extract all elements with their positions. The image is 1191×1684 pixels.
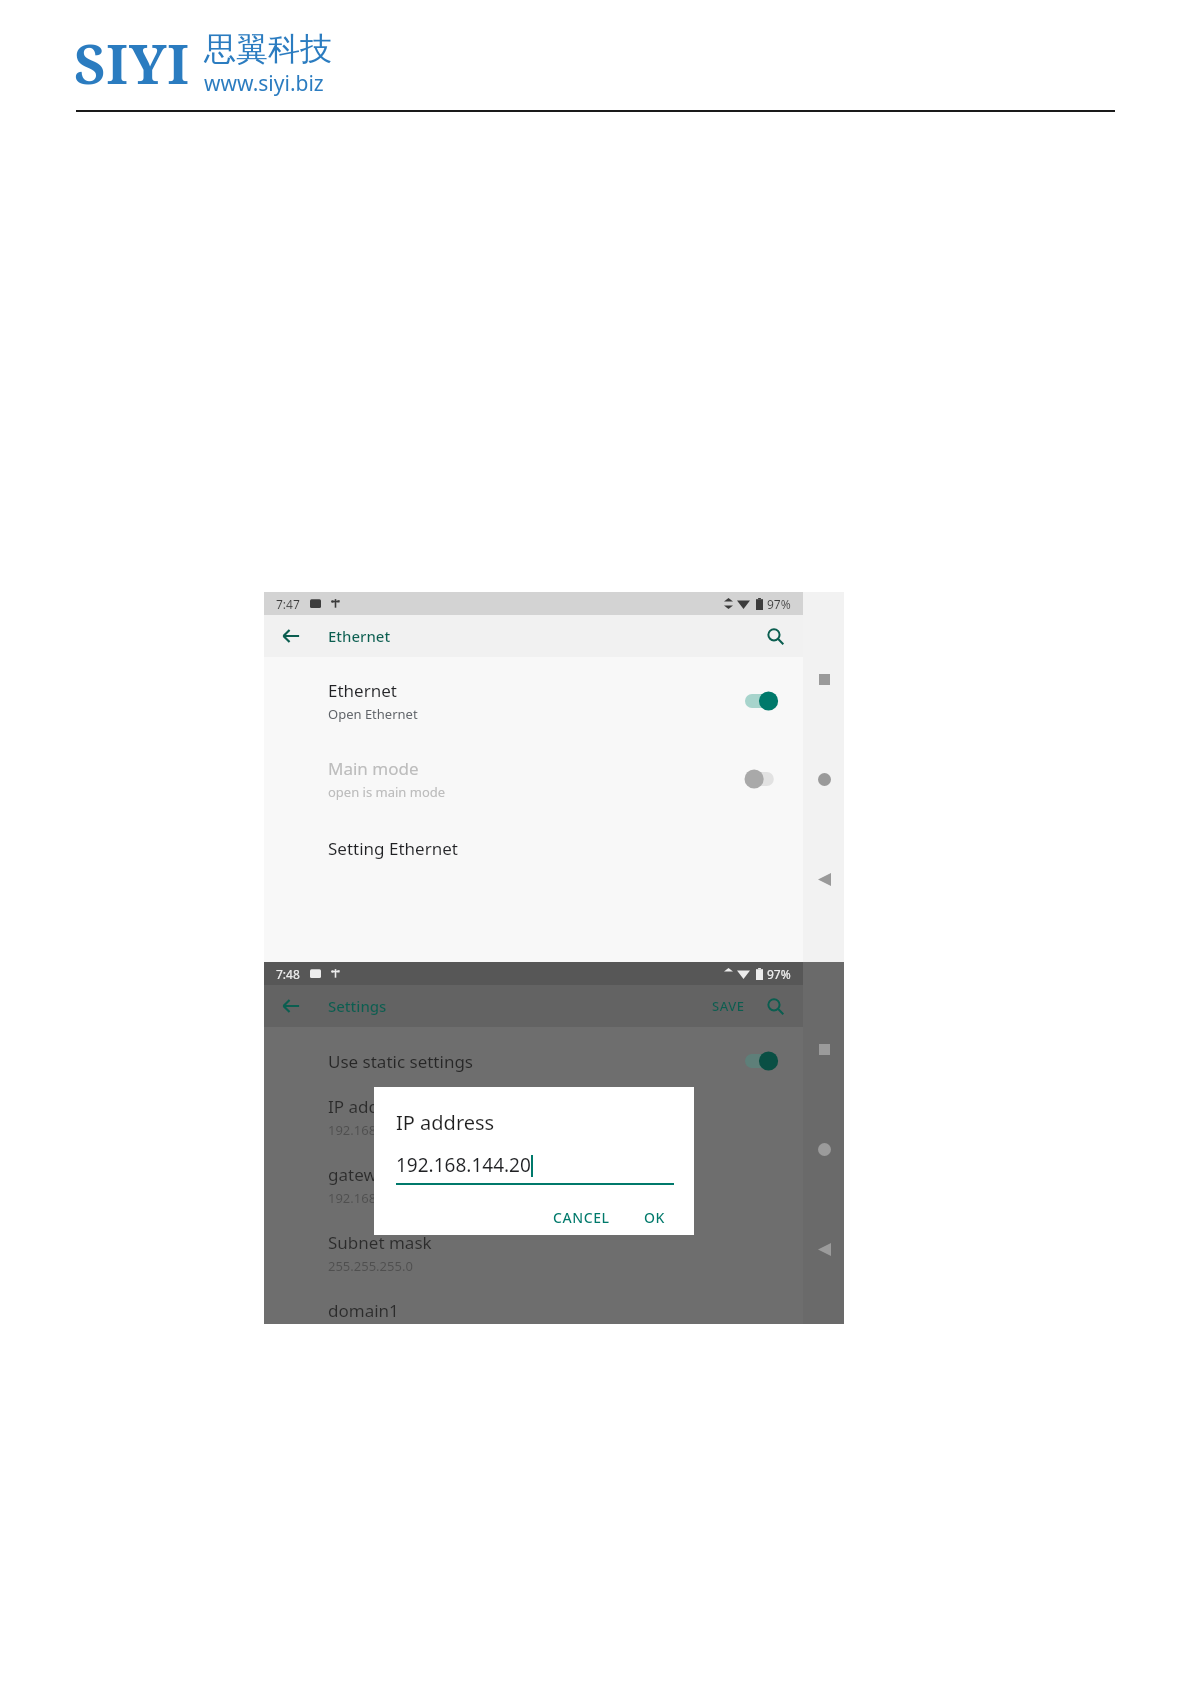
staticText: 97% [767,596,791,612]
staticText: Ethernet [328,626,391,646]
staticText: 97% [767,966,791,982]
staticText: domain1 [328,1299,399,1318]
staticText: 192.168.144.1 [328,1189,413,1207]
staticText: 255.255.255.0 [328,1257,413,1275]
staticText: www.siyi.biz [204,69,324,98]
staticText: SAVE [712,997,745,1015]
staticText: SIYI [74,26,190,100]
staticText: OK [644,1208,666,1227]
button[interactable]: CANCEL [545,1203,618,1232]
staticText: IP address [396,1109,495,1136]
staticText: open is main mode [328,783,446,801]
staticText: 思翼科技 [204,29,332,69]
staticText: 7:48 [276,966,300,982]
staticText: 192.168.144.20 [396,1152,531,1178]
staticText: CANCEL [553,1208,610,1227]
button[interactable]: domain1 [264,1293,803,1324]
button[interactable]: Home [811,766,837,792]
staticText: Settings [328,996,387,1016]
button[interactable]: IP address [264,1089,803,1145]
staticText: 192.168.144.20 [328,1121,421,1139]
button[interactable]: Subnet mask [264,1225,803,1281]
staticText: Use static settings [328,1050,473,1073]
button[interactable]: Search [759,620,791,652]
button[interactable]: Home [811,1136,837,1162]
button[interactable]: Use static settings [264,1043,803,1079]
button[interactable]: Setting Ethernet [264,833,803,864]
button[interactable]: Toggle off [745,767,785,791]
button[interactable]: Toggle on [745,1049,785,1073]
staticText: Open Ethernet [328,705,418,723]
staticText: Main mode [328,757,419,780]
staticText: 7:47 [276,596,300,612]
button[interactable]: Back [274,619,308,653]
staticText: gateway [328,1163,395,1186]
button[interactable]: Search [759,990,791,1022]
button[interactable]: Recent apps [811,1036,837,1062]
staticText: Ethernet [328,679,397,702]
staticText: IP address [328,1095,412,1118]
button[interactable]: SAVE [706,993,751,1019]
button[interactable]: OK [636,1203,674,1232]
staticText: Subnet mask [328,1231,432,1254]
button[interactable]: Back [811,1236,837,1262]
button[interactable]: Recent apps [811,666,837,692]
button[interactable]: Back [811,866,837,892]
button[interactable]: Main mode [264,751,803,807]
button[interactable]: Toggle on [745,689,785,713]
button[interactable]: Back [274,989,308,1023]
staticText: Setting Ethernet [328,837,458,860]
button[interactable]: Ethernet [264,673,803,729]
button[interactable]: gateway [264,1157,803,1213]
